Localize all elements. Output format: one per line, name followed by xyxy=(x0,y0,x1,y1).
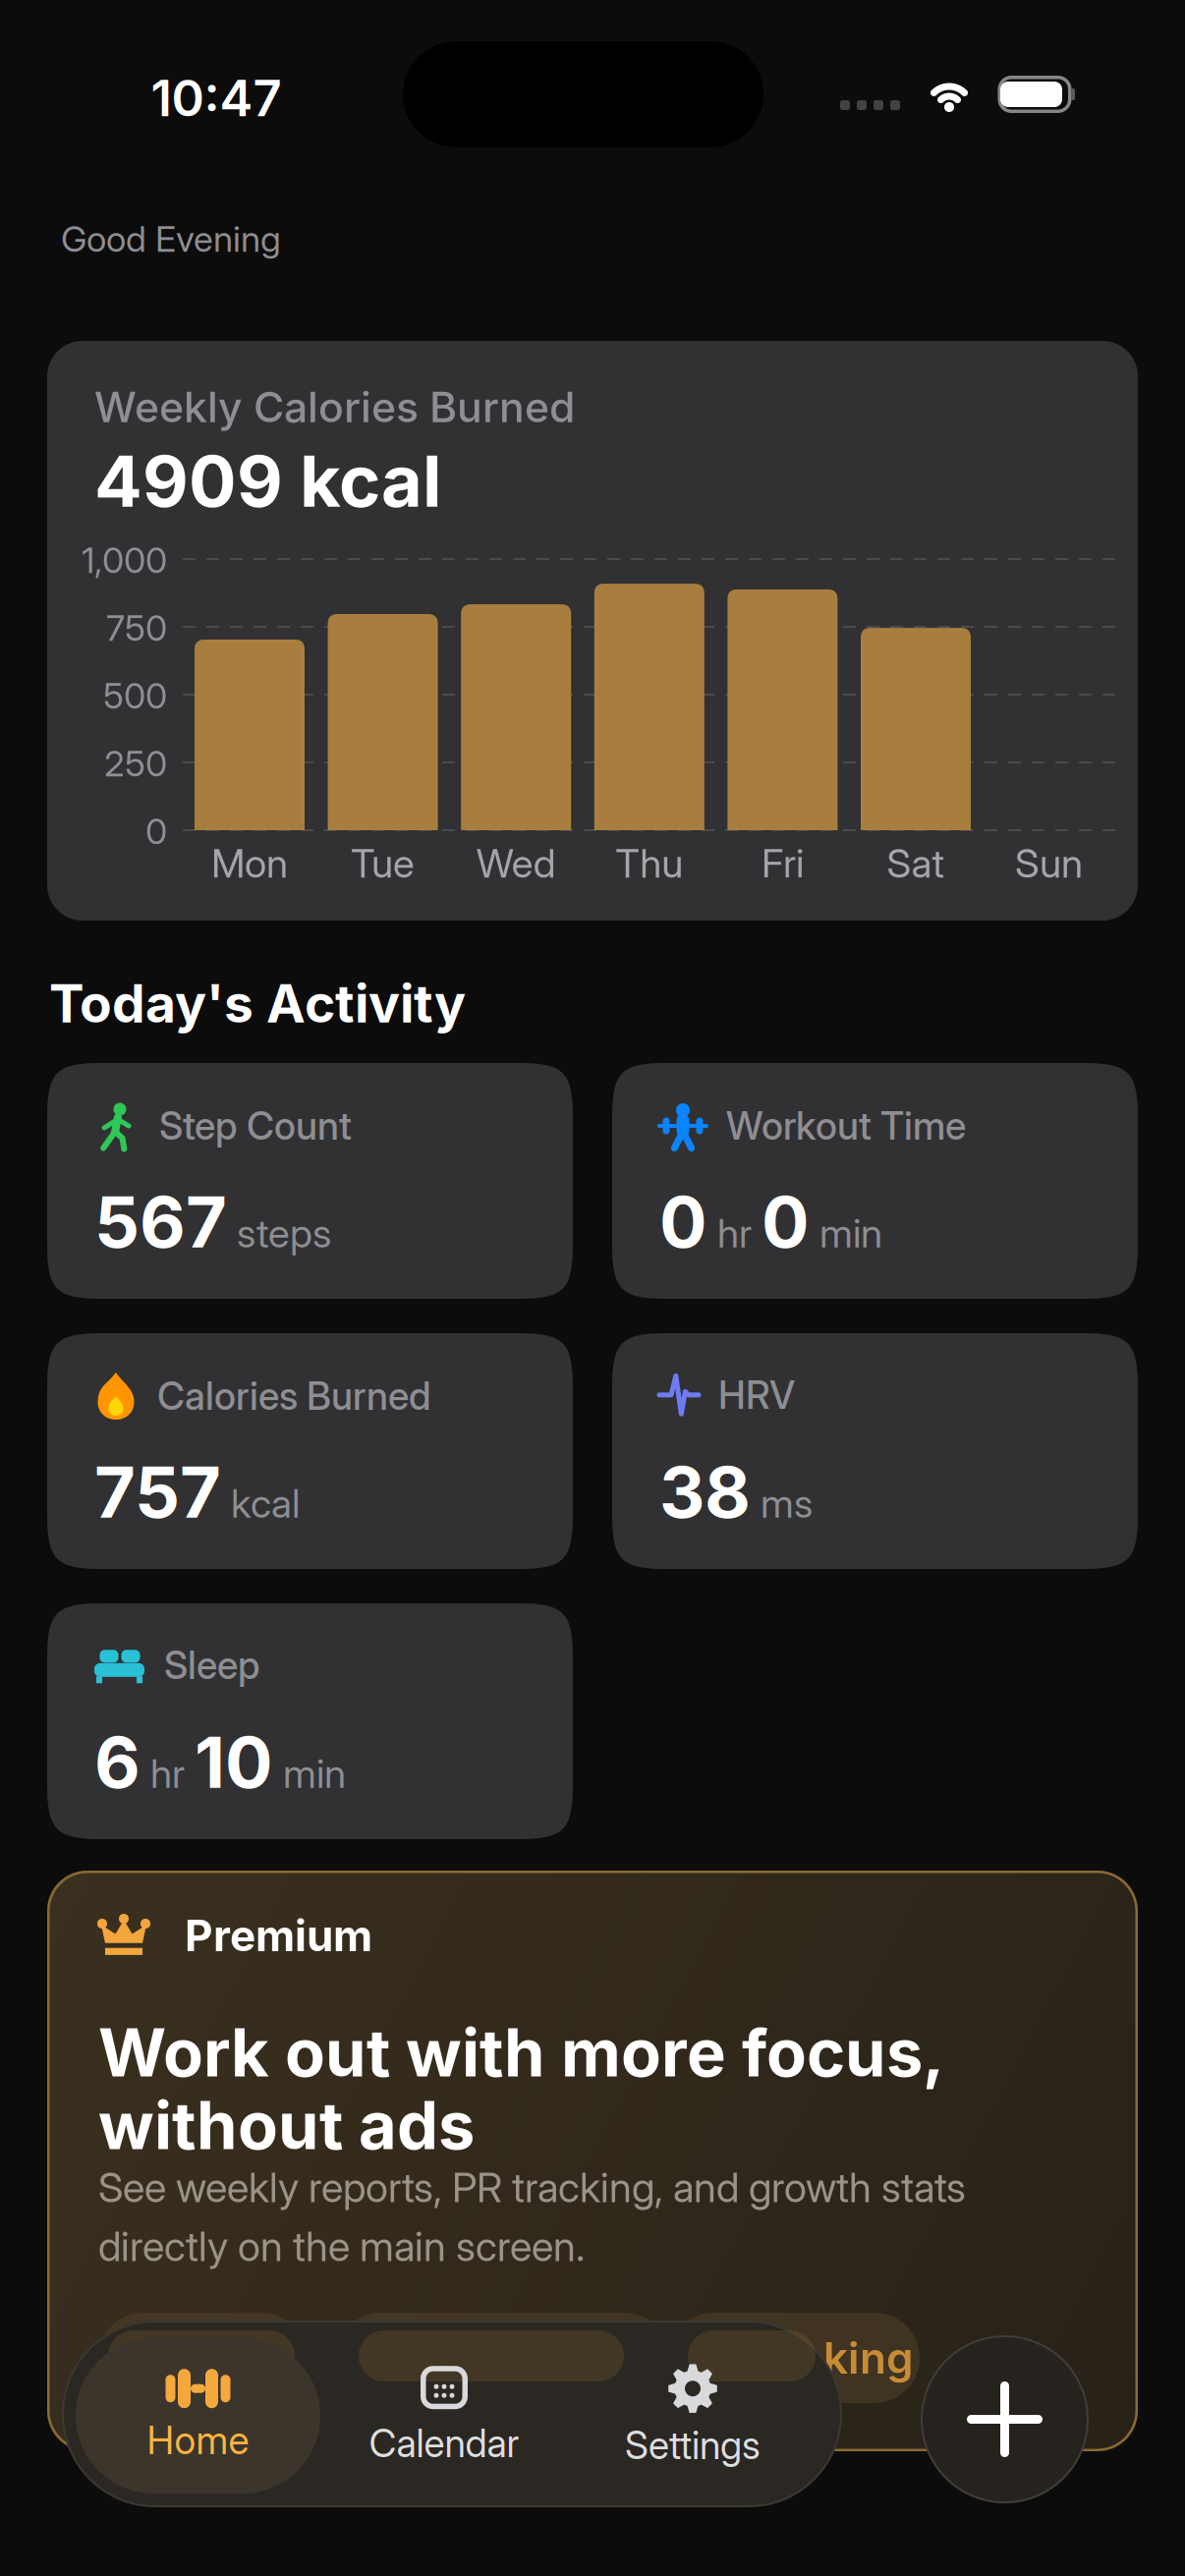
button[interactable]: Workout Time xyxy=(612,1063,1138,1299)
staticText: WEEKLY REPORTS xyxy=(344,2336,662,2380)
staticText: 6 xyxy=(94,1720,141,1804)
button[interactable]: Calories Burned xyxy=(47,1333,573,1569)
staticText: 757 xyxy=(94,1450,221,1534)
staticText: without ads xyxy=(98,2087,475,2164)
staticText: HRV xyxy=(718,1372,795,1417)
button[interactable]: Settings xyxy=(570,2338,816,2493)
staticText: 0 xyxy=(762,1180,810,1263)
staticText: 250 xyxy=(104,743,167,784)
staticText: steps xyxy=(237,1210,331,1256)
button[interactable]: Sleep xyxy=(47,1603,573,1839)
staticText: Fri xyxy=(761,840,804,886)
staticText: Today's Activity xyxy=(49,973,466,1034)
staticText: 0 xyxy=(659,1180,707,1263)
button[interactable]: Home xyxy=(76,2338,320,2493)
staticText: Settings xyxy=(625,2423,761,2468)
staticText: directly on the main screen. xyxy=(98,2222,585,2270)
staticText: 38 xyxy=(659,1450,751,1534)
staticText: Work out with more focus, xyxy=(98,2014,944,2091)
staticText: Calories Burned xyxy=(157,1374,431,1418)
staticText: ms xyxy=(761,1480,813,1527)
staticText: Calendar xyxy=(369,2421,519,2466)
staticText: min xyxy=(283,1750,346,1797)
staticText: Premium xyxy=(185,1910,372,1961)
button[interactable] xyxy=(921,2335,1089,2503)
staticText: See weekly reports, PR tracking, and gro… xyxy=(98,2163,966,2211)
staticText: Step Count xyxy=(159,1103,352,1148)
staticText: Wed xyxy=(476,840,556,886)
staticText: 750 xyxy=(106,607,167,649)
staticText: AD-FREE xyxy=(118,2335,286,2381)
staticText: 0 xyxy=(145,811,167,852)
staticText: Sleep xyxy=(164,1643,260,1687)
staticText: Sun xyxy=(1015,840,1083,886)
staticText: min xyxy=(819,1210,882,1256)
staticText: Good Evening xyxy=(61,218,281,260)
staticText: 567 xyxy=(94,1180,227,1263)
staticText: Mon xyxy=(211,840,288,886)
staticText: kcal xyxy=(231,1480,300,1527)
staticText: 4909 kcal xyxy=(94,439,442,523)
staticText: Tue xyxy=(351,840,415,886)
staticText: 1,000 xyxy=(82,539,167,581)
button[interactable]: HRV xyxy=(612,1333,1138,1569)
staticText: 500 xyxy=(103,675,167,717)
staticText: Weekly Calories Burned xyxy=(94,382,575,432)
staticText: Sat xyxy=(887,840,945,886)
staticText: Thu xyxy=(615,840,683,886)
staticText: Home xyxy=(147,2418,249,2463)
staticText: Workout Time xyxy=(726,1103,966,1148)
staticText: 10:47 xyxy=(151,69,282,128)
button[interactable]: Calendar xyxy=(321,2338,567,2493)
button[interactable]: Premium xyxy=(47,1871,1138,2451)
staticText: PR tracking xyxy=(674,2332,914,2383)
staticText: 10 xyxy=(195,1720,273,1804)
staticText: hr xyxy=(150,1750,185,1797)
button[interactable]: Step Count xyxy=(47,1063,573,1299)
staticText: hr xyxy=(717,1210,752,1256)
